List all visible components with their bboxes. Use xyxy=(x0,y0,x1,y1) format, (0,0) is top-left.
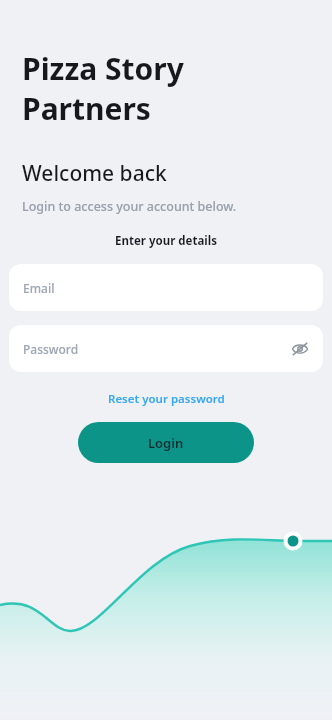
button[interactable]: Login xyxy=(78,422,254,463)
button[interactable]: Password xyxy=(9,325,323,372)
staticText: Pizza Story Partners xyxy=(22,48,184,129)
button[interactable]: Reset your password xyxy=(0,391,332,407)
button[interactable]: Show password xyxy=(287,336,313,362)
staticText: Reset your password xyxy=(108,391,225,407)
staticText: Login xyxy=(148,434,184,452)
staticText: Email xyxy=(23,280,55,296)
staticText: Enter your details xyxy=(0,233,332,249)
staticText: Password xyxy=(23,341,79,357)
button[interactable]: Email xyxy=(9,264,323,311)
staticText: Login to access your account below. xyxy=(22,198,237,215)
staticText: Welcome back xyxy=(22,159,167,188)
